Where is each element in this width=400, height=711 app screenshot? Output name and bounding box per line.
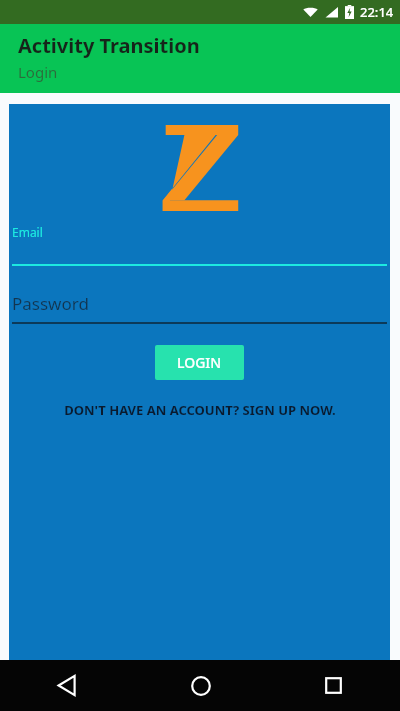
button[interactable]: Email [9,224,390,266]
button[interactable]: Home [134,660,267,711]
button[interactable]: LOGIN [155,345,244,380]
button[interactable]: Recent apps [267,660,400,711]
staticText: DON'T HAVE AN ACCOUNT? SIGN UP NOW. [64,401,336,419]
staticText: Password [12,292,89,315]
staticText: Login [18,62,58,82]
button[interactable]: Back [0,660,134,711]
staticText: LOGIN [177,353,222,372]
button[interactable]: DON'T HAVE AN ACCOUNT? SIGN UP NOW. [9,401,390,419]
button[interactable]: Password [9,292,390,324]
staticText: Activity Transition [18,32,200,59]
staticText: Email [12,224,43,240]
staticText: 22:14 [360,3,394,21]
